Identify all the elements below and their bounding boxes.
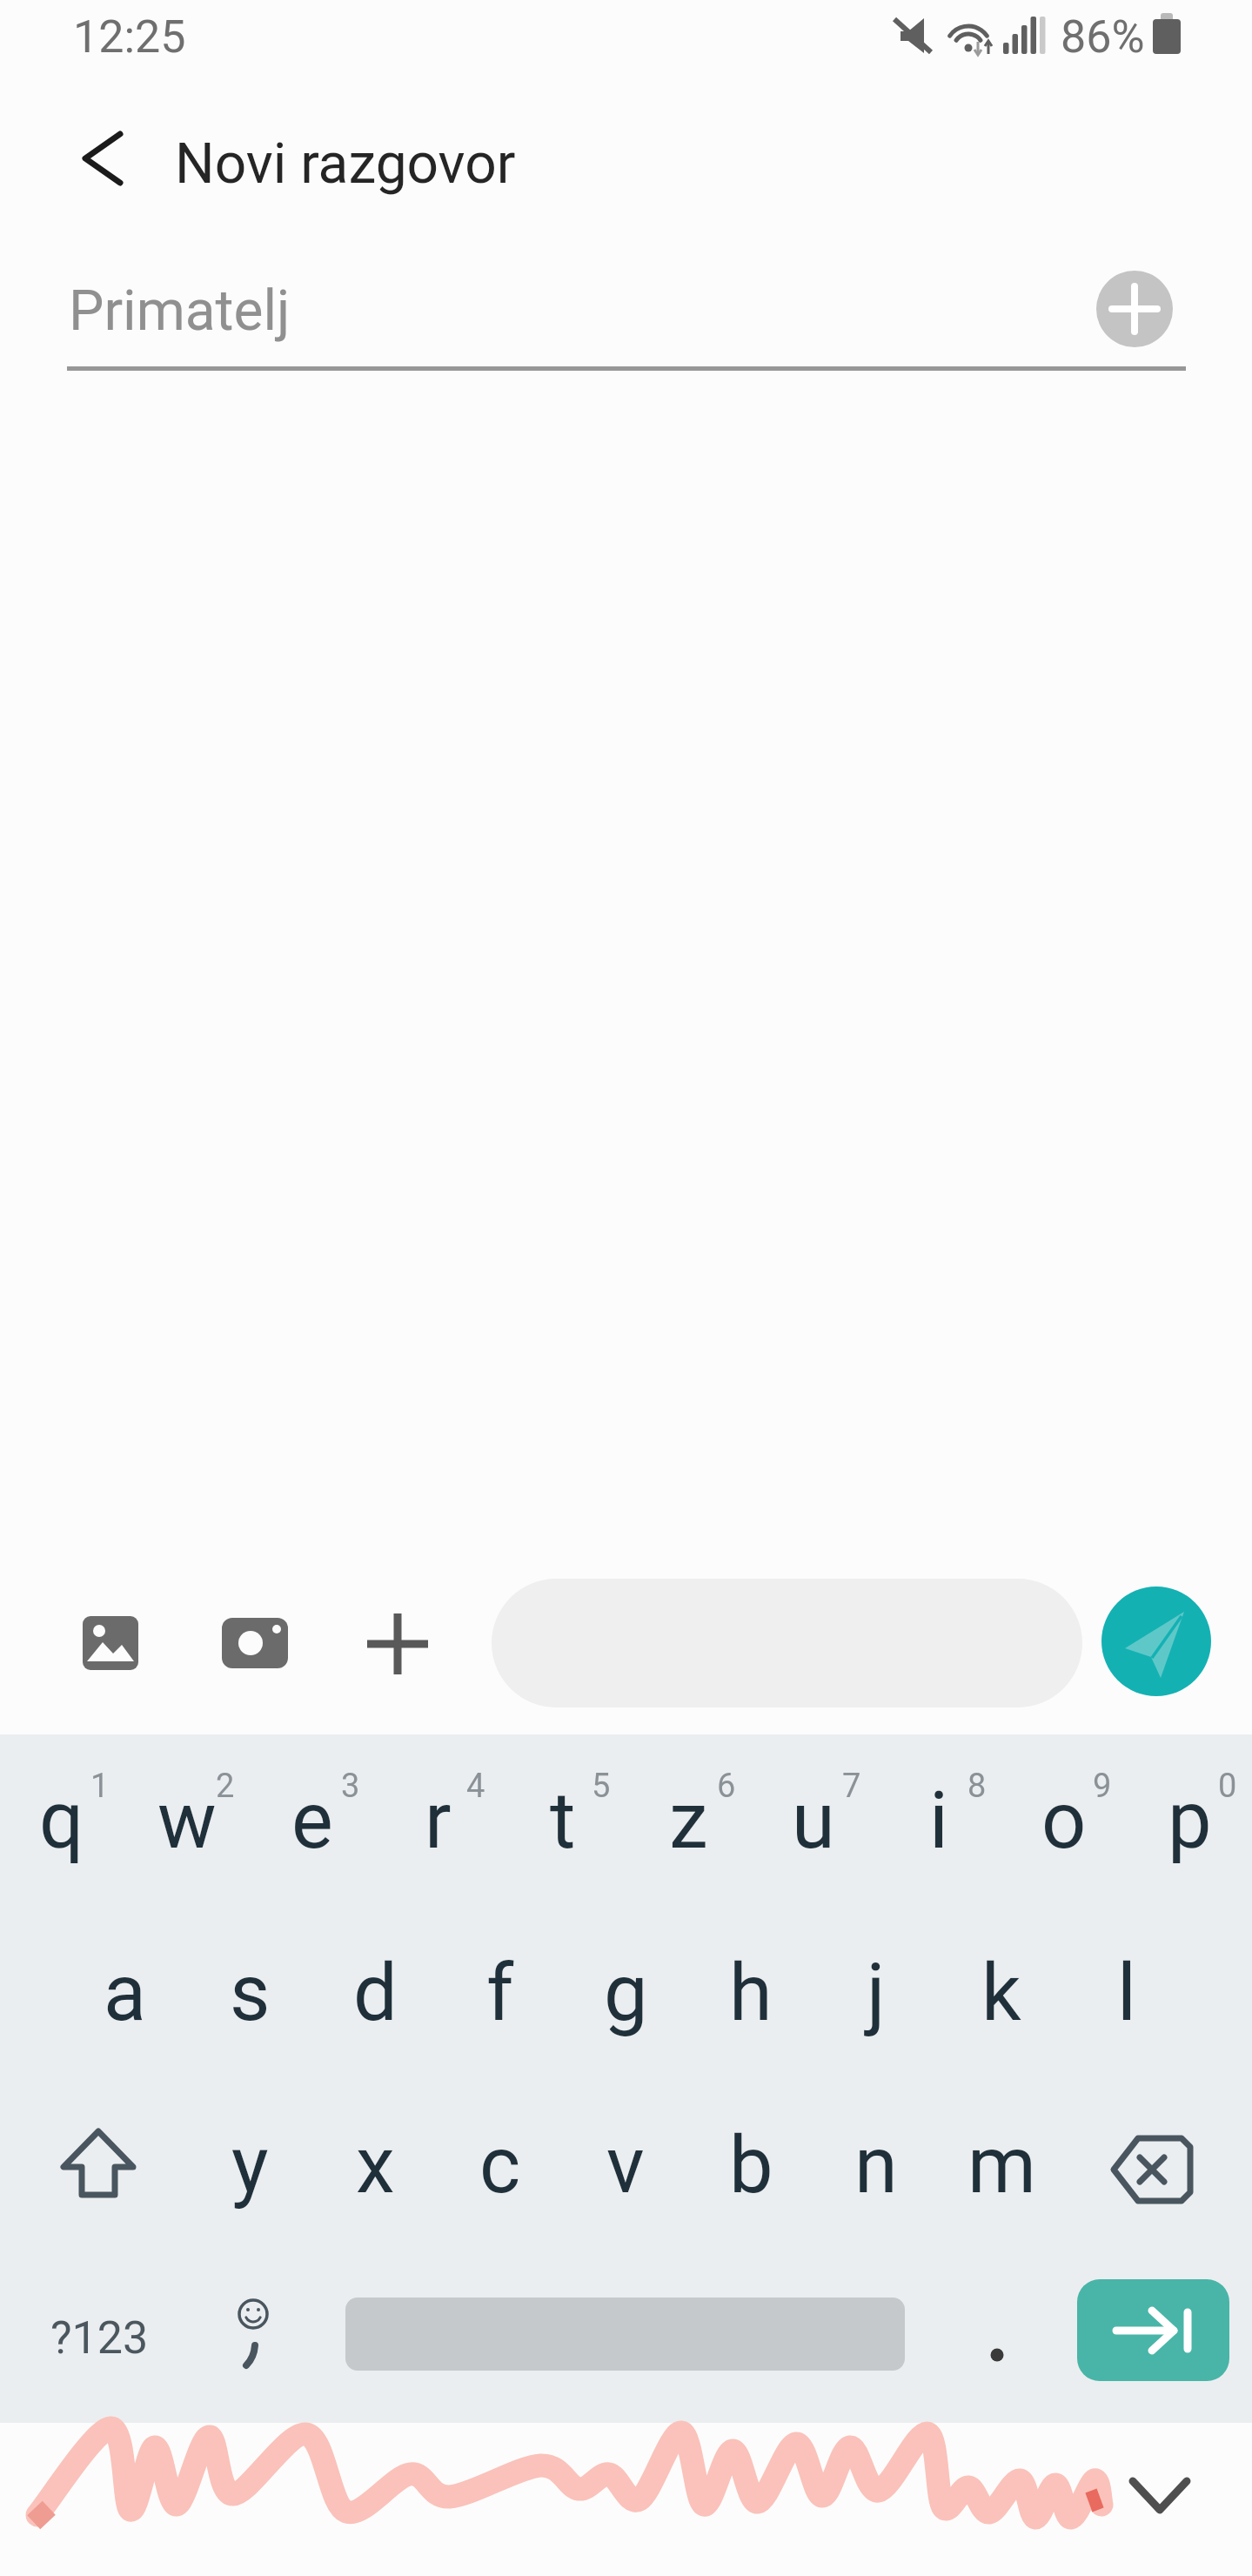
- button[interactable]: u: [751, 1734, 876, 1907]
- staticText: q: [39, 1775, 84, 1867]
- staticText: l: [1117, 1948, 1136, 2039]
- button[interactable]: r: [375, 1734, 500, 1907]
- button[interactable]: v: [563, 2079, 688, 2251]
- staticText: ?123: [50, 2311, 149, 2365]
- button[interactable]: k: [939, 1907, 1064, 2079]
- button[interactable]: [1077, 2279, 1229, 2381]
- button[interactable]: m: [939, 2079, 1064, 2251]
- staticText: r: [425, 1775, 452, 1867]
- button[interactable]: o: [1001, 1734, 1127, 1907]
- staticText: f: [486, 1948, 514, 2039]
- button[interactable]: [213, 1605, 297, 1681]
- staticText: 9: [1093, 1767, 1112, 1806]
- button[interactable]: b: [688, 2079, 813, 2251]
- button[interactable]: i: [876, 1734, 1001, 1907]
- button[interactable]: t: [500, 1734, 626, 1907]
- staticText: 0: [1218, 1767, 1237, 1806]
- staticText: 5: [592, 1767, 611, 1806]
- button[interactable]: [356, 1602, 439, 1686]
- staticText: e: [291, 1775, 333, 1867]
- staticText: 7: [842, 1767, 861, 1806]
- button[interactable]: q: [0, 1734, 124, 1907]
- button[interactable]: e: [250, 1734, 375, 1907]
- staticText: a: [104, 1948, 146, 2039]
- button[interactable]: n: [813, 2079, 939, 2251]
- staticText: i: [929, 1775, 948, 1867]
- button[interactable]: [1096, 271, 1173, 347]
- staticText: g: [604, 1948, 648, 2039]
- staticText: 12:25: [73, 10, 186, 63]
- button[interactable]: [69, 1601, 152, 1685]
- button[interactable]: ?123: [31, 2251, 167, 2424]
- staticText: x: [356, 2120, 395, 2211]
- staticText: k: [981, 1948, 1021, 2039]
- staticText: s: [230, 1948, 271, 2039]
- button[interactable]: w: [124, 1734, 250, 1907]
- staticText: 2: [216, 1767, 235, 1806]
- staticText: Primatelj: [69, 278, 291, 344]
- staticText: c: [479, 2120, 521, 2211]
- staticText: m: [967, 2120, 1036, 2211]
- staticText: h: [729, 1948, 773, 2039]
- staticText: o: [1041, 1775, 1087, 1867]
- staticText: z: [669, 1775, 708, 1867]
- button[interactable]: a: [62, 1907, 187, 2079]
- staticText: 1: [90, 1767, 110, 1806]
- staticText: p: [1168, 1775, 1212, 1867]
- button[interactable]: g: [563, 1907, 688, 2079]
- button[interactable]: h: [688, 1907, 813, 2079]
- staticText: Novi razgovor: [175, 131, 516, 197]
- staticText: 8: [967, 1767, 987, 1806]
- button[interactable]: j: [813, 1907, 939, 2079]
- button[interactable]: [966, 2280, 1028, 2393]
- button[interactable]: [191, 2251, 316, 2424]
- button[interactable]: f: [438, 1907, 563, 2079]
- button[interactable]: x: [312, 2079, 438, 2251]
- button[interactable]: d: [312, 1907, 438, 2079]
- button[interactable]: z: [626, 1734, 751, 1907]
- staticText: 4: [466, 1767, 485, 1806]
- button[interactable]: y: [187, 2079, 312, 2251]
- staticText: y: [231, 2120, 269, 2211]
- button[interactable]: [1085, 2079, 1221, 2251]
- staticText: b: [729, 2120, 773, 2211]
- staticText: v: [606, 2120, 645, 2211]
- staticText: d: [353, 1948, 398, 2039]
- staticText: 86%: [1061, 10, 1145, 63]
- staticText: w: [157, 1775, 217, 1867]
- staticText: u: [792, 1775, 835, 1867]
- button[interactable]: [1101, 1587, 1211, 1696]
- staticText: 6: [717, 1767, 736, 1806]
- button[interactable]: p: [1127, 1734, 1252, 1907]
- button[interactable]: c: [438, 2079, 563, 2251]
- button[interactable]: l: [1064, 1907, 1189, 2079]
- button[interactable]: [31, 2079, 167, 2251]
- staticText: j: [867, 1948, 886, 2039]
- staticText: n: [854, 2120, 898, 2211]
- button[interactable]: s: [187, 1907, 312, 2079]
- button[interactable]: [52, 122, 139, 202]
- staticText: 3: [341, 1767, 360, 1806]
- staticText: t: [550, 1775, 576, 1867]
